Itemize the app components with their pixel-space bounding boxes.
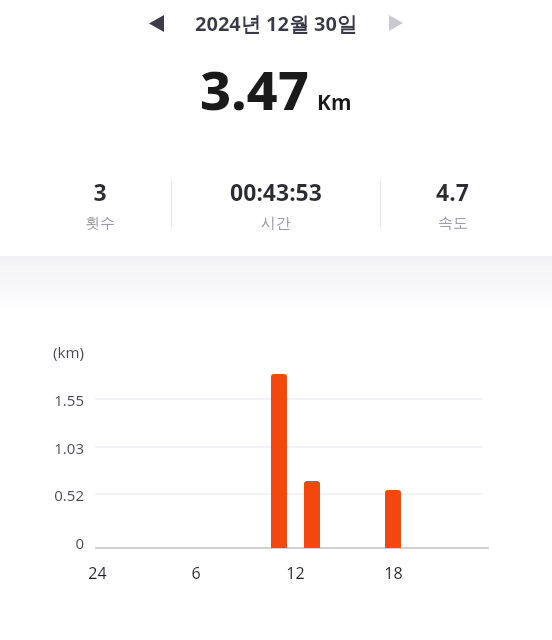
staticText: 18: [384, 562, 403, 584]
button[interactable]: 4.7: [381, 152, 524, 256]
staticText: 00:43:53: [230, 176, 322, 207]
staticText: 12: [286, 562, 305, 584]
staticText: Km: [317, 88, 352, 117]
staticText: 횟수: [85, 214, 115, 233]
staticText: 0.52: [54, 485, 84, 505]
staticText: 4.7: [436, 176, 469, 207]
staticText: 0: [75, 533, 84, 553]
button[interactable]: Previous day: [138, 7, 174, 39]
staticText: 6: [191, 562, 201, 584]
staticText: 1.55: [54, 390, 84, 410]
button[interactable]: 00:43:53: [172, 152, 380, 256]
staticText: 2024년 12월 30일: [195, 10, 357, 37]
button[interactable]: 3: [28, 152, 524, 256]
staticText: 24: [88, 562, 107, 584]
staticText: (km): [53, 342, 85, 362]
button[interactable]: 3: [28, 152, 171, 256]
staticText: 속도: [438, 214, 468, 233]
staticText: 3.47: [200, 52, 310, 124]
staticText: 1.03: [54, 438, 84, 458]
button[interactable]: Next day: [378, 7, 414, 39]
button[interactable]: 2024년 12월 30일: [186, 5, 366, 41]
staticText: 3: [93, 176, 107, 207]
staticText: 시간: [261, 214, 291, 233]
